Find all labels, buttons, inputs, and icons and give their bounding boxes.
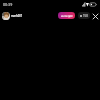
- button[interactable]: Profile: [2, 12, 10, 20]
- button[interactable]: Close: [91, 12, 99, 20]
- staticText: 00:39: [3, 2, 13, 7]
- button[interactable]: 라이브 참여: [58, 12, 75, 19]
- button[interactable]: Viewers: [78, 12, 90, 19]
- staticText: 158: [83, 14, 88, 18]
- button[interactable]: mark001: [11, 14, 23, 18]
- staticText: mark001: [11, 14, 23, 18]
- staticText: 라이브 참여: [61, 15, 73, 18]
